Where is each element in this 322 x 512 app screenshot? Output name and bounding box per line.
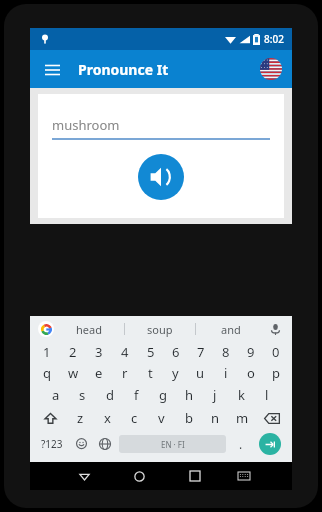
button[interactable]: Recents <box>167 462 222 490</box>
staticText: 6 <box>172 343 180 361</box>
button[interactable]: k <box>228 384 254 406</box>
button[interactable]: u <box>188 362 213 384</box>
button[interactable]: i <box>213 362 238 384</box>
button[interactable]: Emoji <box>70 430 93 458</box>
button[interactable]: and <box>196 316 266 342</box>
button[interactable]: Back <box>56 462 112 490</box>
button[interactable]: 9 <box>238 342 263 362</box>
staticText: u <box>196 364 205 382</box>
staticText: i <box>224 364 228 382</box>
button[interactable]: Voice input <box>266 320 284 338</box>
button[interactable]: EN · FI <box>119 435 226 453</box>
staticText: 9 <box>247 343 255 361</box>
staticText: x <box>104 409 111 427</box>
staticText: soup <box>147 322 173 337</box>
staticText: y <box>172 364 179 382</box>
staticText: 4 <box>121 343 129 361</box>
button[interactable]: c <box>121 406 148 430</box>
button[interactable]: g <box>150 384 176 406</box>
staticText: j <box>213 386 217 404</box>
button[interactable]: 7 <box>188 342 213 362</box>
button[interactable]: q <box>34 362 60 384</box>
button[interactable]: s <box>69 384 96 406</box>
button[interactable]: Menu <box>38 55 66 83</box>
staticText: l <box>265 386 269 404</box>
staticText: mushroom <box>52 116 120 134</box>
staticText: and <box>221 322 241 337</box>
staticText: Pronounce It <box>78 60 169 79</box>
staticText: q <box>43 364 51 382</box>
button[interactable]: 6 <box>163 342 188 362</box>
button[interactable]: h <box>176 384 202 406</box>
staticText: 3 <box>95 343 103 361</box>
staticText: c <box>131 409 138 427</box>
button[interactable]: m <box>229 406 256 430</box>
button[interactable]: Language flag <box>260 58 282 80</box>
staticText: 2 <box>69 343 77 361</box>
staticText: 0 <box>272 343 280 361</box>
staticText: d <box>106 386 114 404</box>
button[interactable]: x <box>94 406 121 430</box>
staticText: h <box>185 386 194 404</box>
staticText: v <box>158 409 165 427</box>
button[interactable]: Google <box>38 321 54 337</box>
staticText: a <box>52 386 60 404</box>
staticText: 8:02 <box>264 32 284 46</box>
staticText: z <box>77 409 84 427</box>
staticText: e <box>95 364 103 382</box>
button[interactable]: e <box>86 362 112 384</box>
staticText: 7 <box>197 343 205 361</box>
staticText: head <box>76 322 102 337</box>
button[interactable]: v <box>148 406 175 430</box>
button[interactable]: Home <box>112 462 167 490</box>
button[interactable]: Keyboard <box>222 462 266 490</box>
staticText: 1 <box>43 343 51 361</box>
button[interactable]: p <box>263 362 288 384</box>
staticText: 5 <box>147 343 155 361</box>
button[interactable]: Backspace <box>256 406 288 430</box>
button[interactable]: 5 <box>138 342 163 362</box>
button[interactable]: 4 <box>112 342 138 362</box>
button[interactable]: 3 <box>86 342 112 362</box>
button[interactable]: Shift <box>34 406 67 430</box>
button[interactable]: a <box>42 384 69 406</box>
button[interactable]: z <box>67 406 94 430</box>
button[interactable]: w <box>60 362 86 384</box>
staticText: m <box>236 409 249 427</box>
button[interactable]: ?123 <box>34 430 70 458</box>
staticText: f <box>134 386 139 404</box>
button[interactable]: Speak <box>138 154 184 200</box>
button[interactable]: j <box>202 384 228 406</box>
button[interactable]: d <box>96 384 123 406</box>
staticText: o <box>247 364 255 382</box>
button[interactable]: b <box>175 406 202 430</box>
button[interactable]: n <box>202 406 229 430</box>
staticText: w <box>68 364 79 382</box>
button[interactable]: soup <box>125 316 195 342</box>
button[interactable]: Change language <box>93 430 116 458</box>
button[interactable]: o <box>238 362 263 384</box>
staticText: n <box>211 409 220 427</box>
staticText: s <box>79 386 86 404</box>
staticText: ?123 <box>41 437 63 451</box>
button[interactable]: r <box>112 362 138 384</box>
button[interactable]: y <box>163 362 188 384</box>
button[interactable]: Enter <box>259 433 281 455</box>
staticText: b <box>185 409 193 427</box>
button[interactable]: 2 <box>60 342 86 362</box>
staticText: t <box>148 364 153 382</box>
button[interactable]: t <box>138 362 163 384</box>
staticText: 8 <box>222 343 230 361</box>
button[interactable]: f <box>123 384 150 406</box>
button[interactable]: 1 <box>34 342 60 362</box>
button[interactable]: l <box>254 384 280 406</box>
staticText: EN · FI <box>161 439 185 450</box>
staticText: . <box>239 436 243 452</box>
staticText: g <box>159 386 167 404</box>
staticText: r <box>122 364 128 382</box>
button[interactable]: 0 <box>263 342 288 362</box>
button[interactable]: 8 <box>213 342 238 362</box>
staticText: p <box>272 364 280 382</box>
button[interactable]: head <box>54 316 124 342</box>
button[interactable]: . <box>229 430 252 458</box>
